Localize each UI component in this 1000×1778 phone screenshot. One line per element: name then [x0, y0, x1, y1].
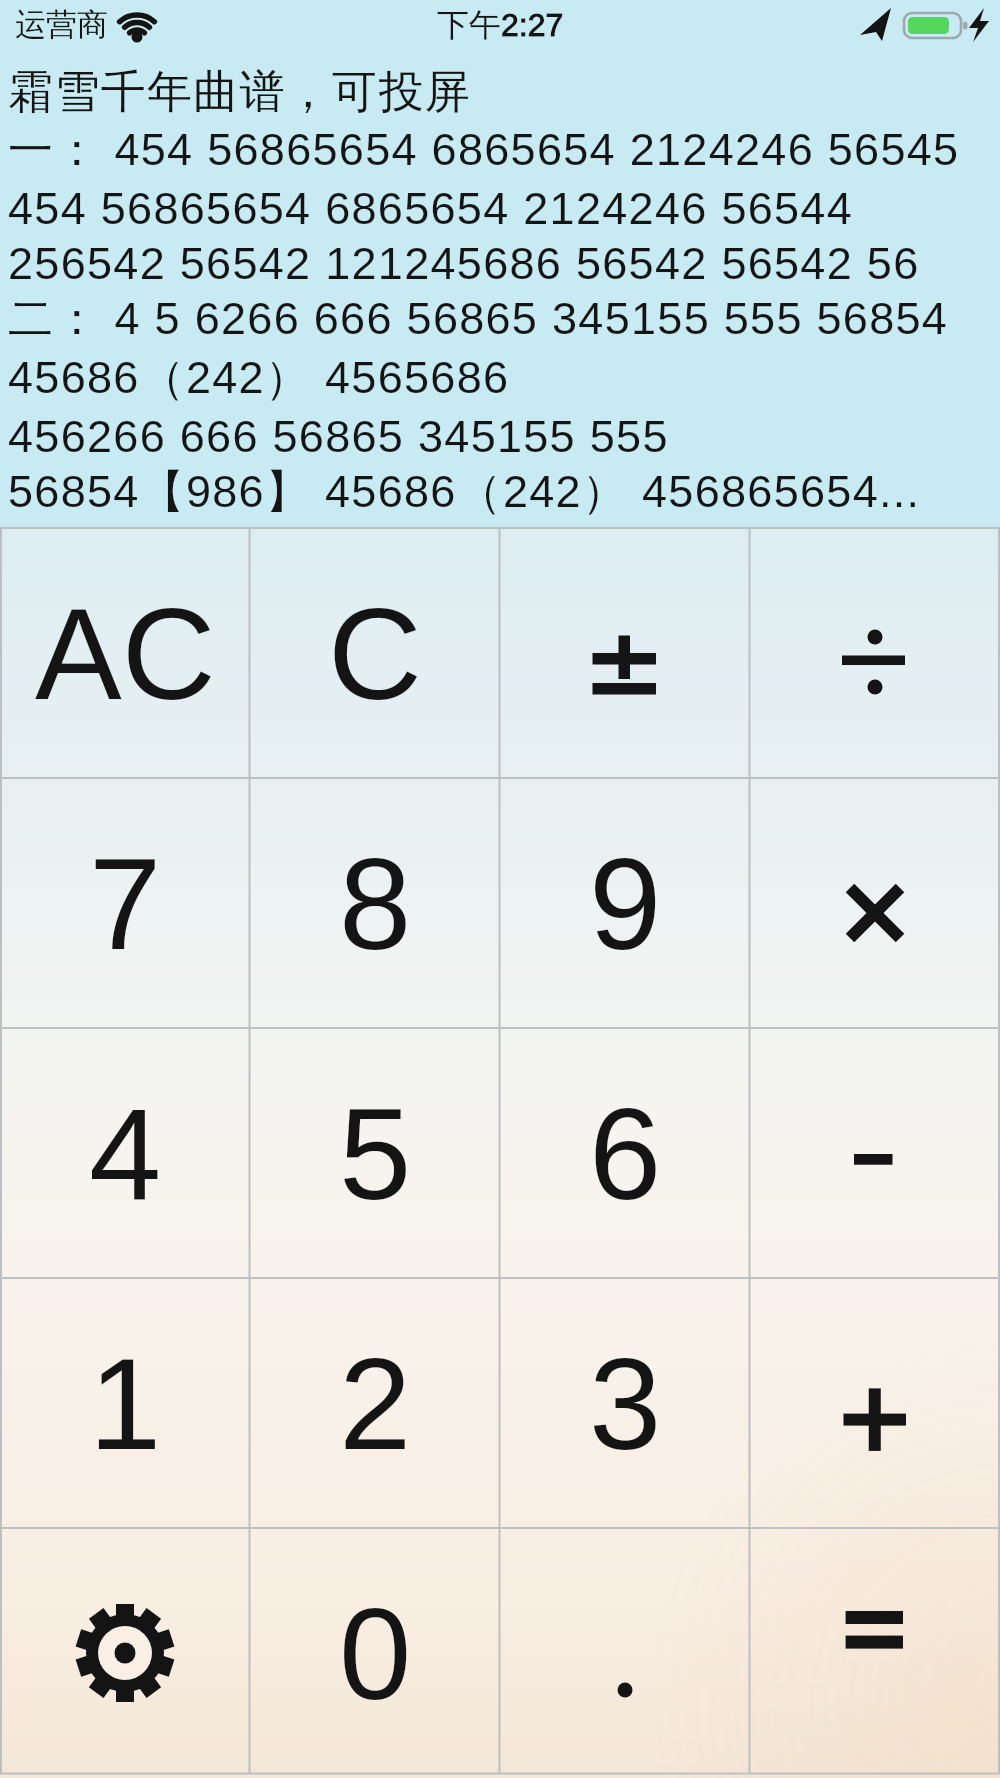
button[interactable]: 霜雪千年曲谱，可投屏 一： 454 56865654 6865654 21242…: [8, 64, 960, 521]
button[interactable]: AC: [0, 528, 250, 778]
button[interactable]: 8: [250, 778, 500, 1028]
button[interactable]: 运营商: [15, 5, 108, 44]
staticText: 2: [339, 1331, 412, 1476]
button[interactable]: [750, 778, 1000, 1028]
staticText: 下午2:27: [437, 5, 564, 45]
staticText: 运营商: [15, 5, 108, 44]
button[interactable]: [750, 1028, 1000, 1278]
button[interactable]: [0, 1528, 250, 1778]
staticText: 5: [339, 1081, 412, 1226]
staticText: C: [328, 581, 422, 726]
button[interactable]: 6: [500, 1028, 750, 1278]
staticText: 1: [89, 1331, 162, 1476]
button[interactable]: 7: [0, 778, 250, 1028]
button[interactable]: [500, 528, 750, 778]
staticText: 0: [339, 1581, 412, 1726]
button[interactable]: 5: [250, 1028, 500, 1278]
button[interactable]: [750, 528, 1000, 778]
button[interactable]: 4: [0, 1028, 250, 1278]
staticText: 3: [589, 1331, 662, 1476]
button[interactable]: 9: [500, 778, 750, 1028]
staticText: 8: [339, 831, 412, 976]
staticText: 霜雪千年曲谱，可投屏 一： 454 56865654 6865654 21242…: [8, 64, 960, 521]
button[interactable]: 0: [250, 1528, 500, 1778]
button[interactable]: 2: [250, 1278, 500, 1528]
button[interactable]: [500, 1528, 750, 1778]
staticText: AC: [35, 581, 216, 726]
staticText: 6: [589, 1081, 662, 1226]
button[interactable]: 3: [500, 1278, 750, 1528]
staticText: 7: [89, 831, 162, 976]
staticText: 4: [89, 1081, 162, 1226]
button[interactable]: [750, 1528, 1000, 1778]
button[interactable]: C: [250, 528, 500, 778]
button[interactable]: [750, 1278, 1000, 1528]
button[interactable]: 1: [0, 1278, 250, 1528]
staticText: 9: [589, 831, 662, 976]
